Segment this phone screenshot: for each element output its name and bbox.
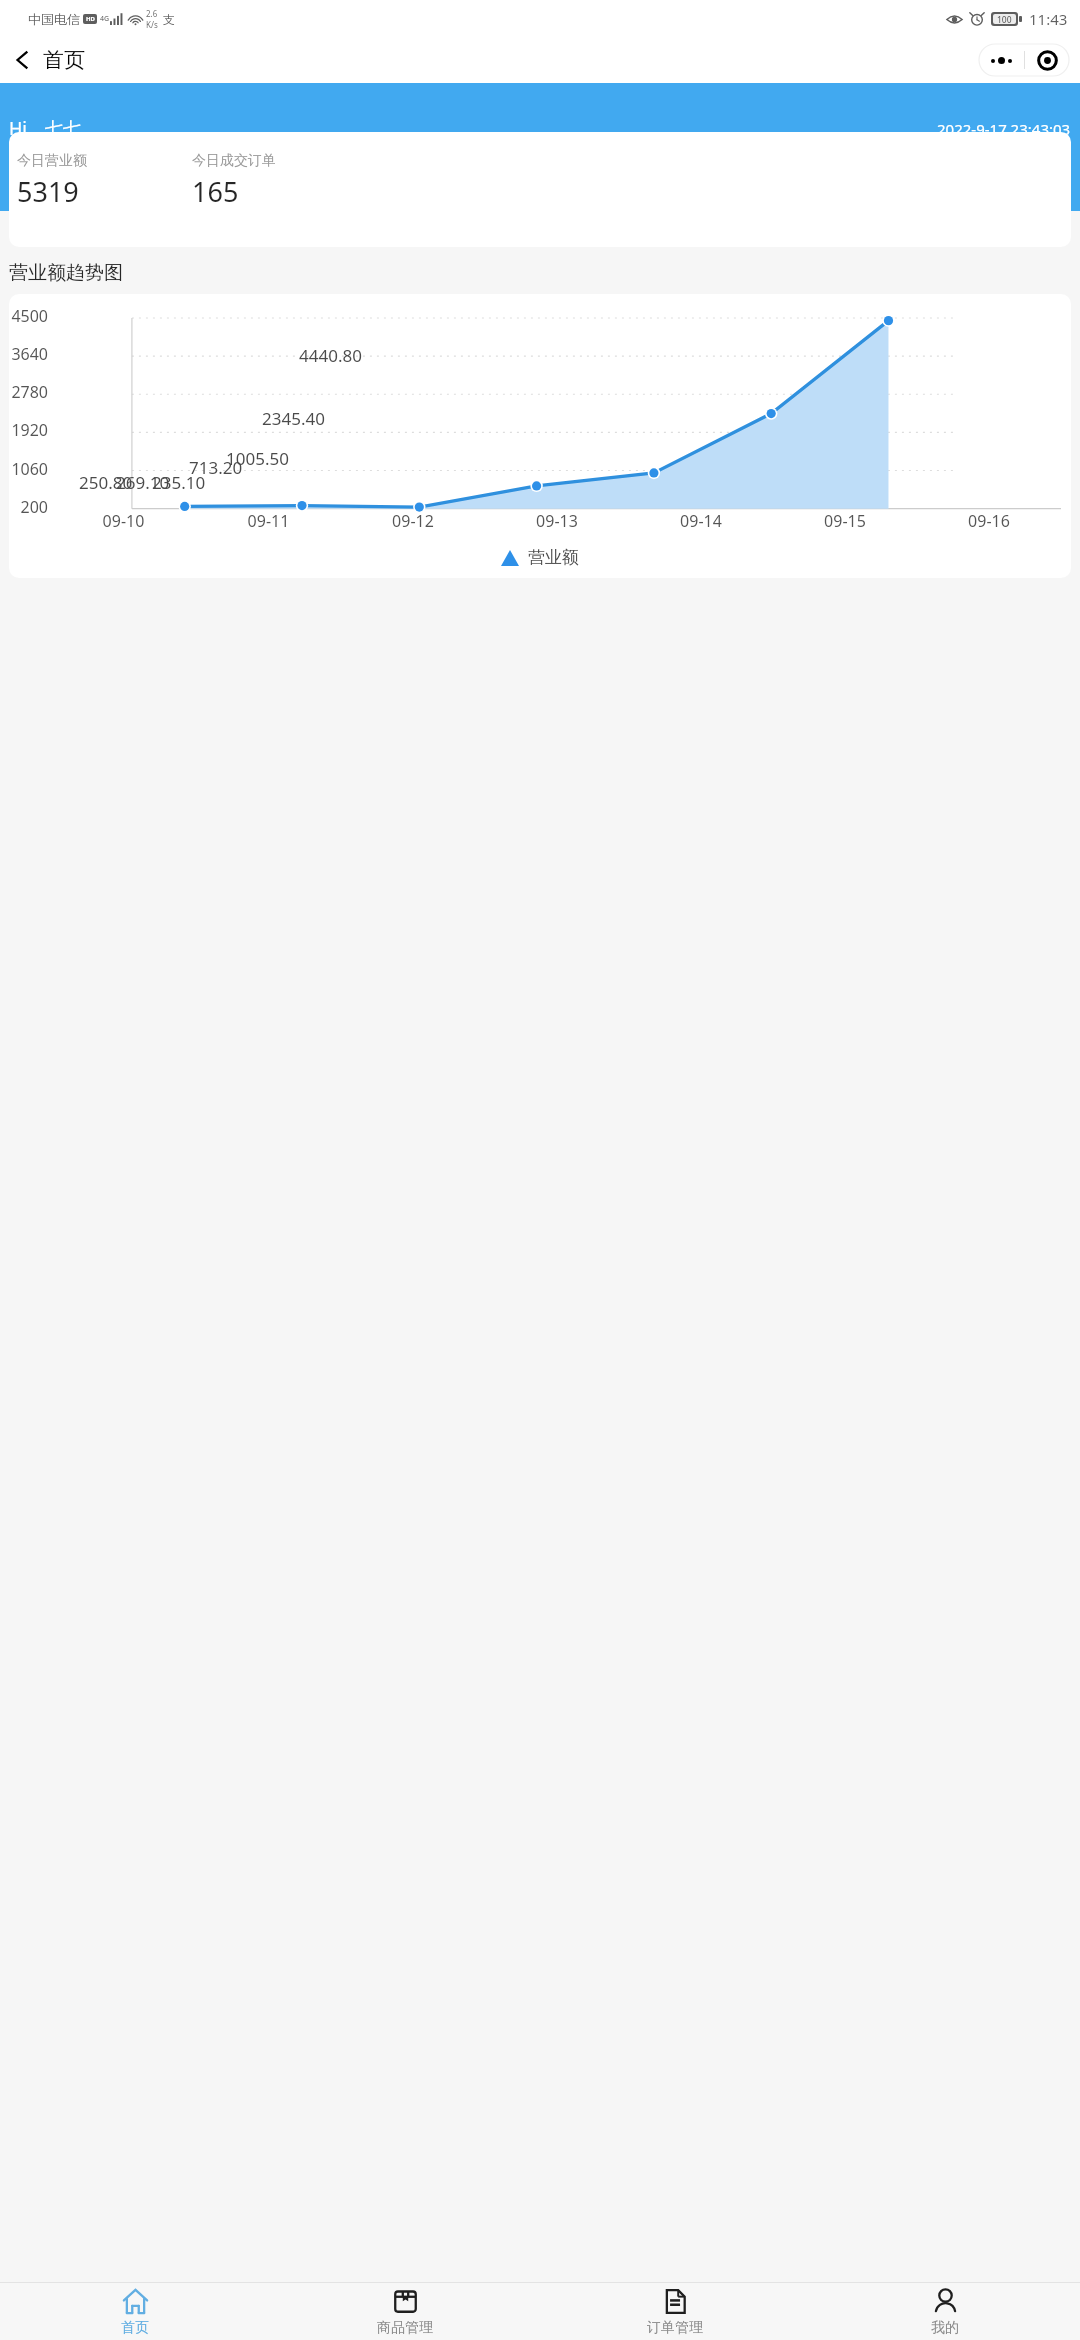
staticText: 2345.40 bbox=[262, 407, 325, 430]
staticText: 11:43 bbox=[1029, 9, 1068, 29]
staticText: 09-12 bbox=[341, 510, 485, 532]
staticText: 250.80 bbox=[79, 471, 133, 494]
staticText: 我的 bbox=[931, 2319, 959, 2336]
staticText: 支 bbox=[163, 12, 175, 27]
staticText: 09-16 bbox=[917, 510, 1061, 532]
staticText: 235.10 bbox=[152, 471, 206, 494]
staticText: 09-14 bbox=[629, 510, 773, 532]
staticText: 2780 bbox=[11, 381, 48, 403]
staticText: 09-11 bbox=[196, 510, 341, 532]
staticText: 3640 bbox=[11, 343, 48, 365]
staticText: 1005.50 bbox=[226, 447, 289, 470]
staticText: 09-13 bbox=[485, 510, 629, 532]
button[interactable]: 订单管理 bbox=[540, 2283, 810, 2340]
staticText: 订单管理 bbox=[647, 2319, 703, 2336]
staticText: 5319 bbox=[17, 173, 79, 210]
staticText: K/s bbox=[146, 19, 158, 30]
button[interactable]: 首页 bbox=[0, 2283, 270, 2340]
staticText: 营业额趋势图 bbox=[9, 261, 123, 285]
staticText: 首页 bbox=[121, 2319, 149, 2336]
staticText: 2.6 bbox=[146, 8, 158, 19]
staticText: 商品管理 bbox=[377, 2319, 433, 2336]
button[interactable]: 我的 bbox=[810, 2283, 1080, 2340]
button[interactable]: 今日营业额 bbox=[9, 132, 1071, 247]
button[interactable]: Back bbox=[0, 43, 95, 77]
staticText: 中国电信 bbox=[28, 11, 80, 27]
staticText: 今日营业额 bbox=[17, 152, 87, 170]
staticText: 首页 bbox=[43, 47, 85, 73]
staticText: 1920 bbox=[11, 419, 48, 441]
button[interactable]: 商品管理 bbox=[270, 2283, 540, 2340]
staticText: 09-10 bbox=[51, 510, 196, 532]
staticText: 2022-9-17 23:43:03 bbox=[937, 119, 1071, 139]
staticText: 4440.80 bbox=[299, 344, 362, 367]
staticText: 100 bbox=[997, 14, 1012, 24]
staticText: 营业额 bbox=[528, 547, 579, 568]
button[interactable]: Menu and close bbox=[979, 44, 1069, 76]
staticText: Hi，七七 bbox=[9, 116, 81, 141]
staticText: 200 bbox=[11, 496, 48, 518]
staticText: 4G bbox=[100, 14, 110, 24]
staticText: 165 bbox=[192, 173, 239, 210]
staticText: 269.10 bbox=[116, 471, 170, 494]
staticText: 1060 bbox=[11, 458, 48, 480]
staticText: HD bbox=[86, 15, 95, 23]
staticText: 4500 bbox=[11, 305, 48, 327]
staticText: 09-15 bbox=[773, 510, 917, 532]
staticText: 今日成交订单 bbox=[192, 152, 276, 170]
staticText: 713.20 bbox=[189, 456, 243, 479]
